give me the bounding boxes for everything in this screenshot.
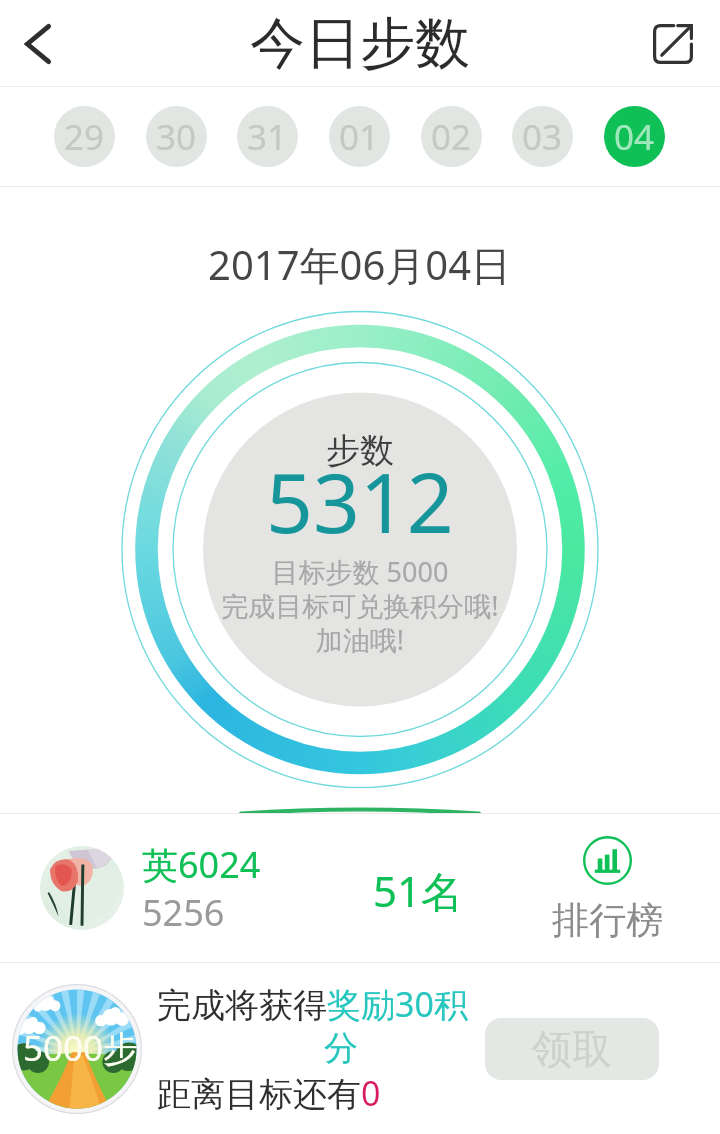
- button[interactable]: Back: [0, 0, 75, 87]
- staticText: 51名: [373, 862, 464, 919]
- staticText: 04: [614, 113, 655, 161]
- staticText: 排行榜: [552, 897, 663, 944]
- staticText: 分: [157, 1027, 525, 1070]
- staticText: 英6024: [142, 840, 261, 889]
- staticText: 30: [156, 113, 197, 161]
- staticText: 距离目标还有0: [157, 1070, 381, 1116]
- staticText: 02: [431, 113, 472, 161]
- button[interactable]: 03: [512, 106, 573, 167]
- button[interactable]: 排行榜: [552, 836, 663, 944]
- button[interactable]: 01: [329, 106, 390, 167]
- button[interactable]: 31: [237, 106, 298, 167]
- button[interactable]: 04: [604, 106, 665, 167]
- staticText: 5000步: [23, 1024, 139, 1072]
- staticText: 今日步数: [250, 9, 470, 78]
- staticText: 5312: [266, 445, 454, 557]
- button[interactable]: 英6024: [0, 814, 720, 962]
- staticText: 目标步数 5000 完成目标可兑换积分哦! 加油哦!: [221, 553, 499, 658]
- staticText: 2017年06月04日: [208, 237, 512, 292]
- button[interactable]: Share: [625, 0, 720, 87]
- staticText: 完成将获得奖励30积: [157, 981, 468, 1027]
- staticText: 29: [64, 113, 105, 161]
- button[interactable]: 30: [146, 106, 207, 167]
- staticText: 01: [339, 113, 380, 161]
- staticText: 领取: [532, 1024, 612, 1074]
- button[interactable]: 02: [421, 106, 482, 167]
- button[interactable]: 29: [54, 106, 115, 167]
- staticText: 31: [247, 113, 288, 161]
- staticText: 步数: [326, 429, 394, 472]
- button[interactable]: 领取: [485, 1018, 659, 1080]
- staticText: 5256: [142, 888, 225, 937]
- staticText: 03: [522, 113, 563, 161]
